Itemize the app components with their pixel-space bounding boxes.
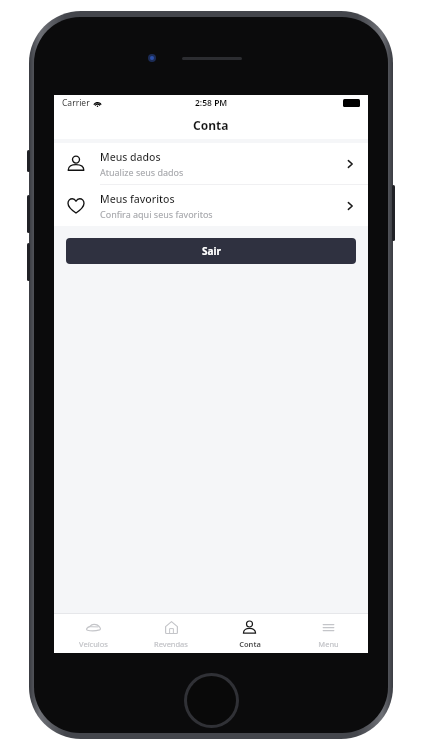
staticText: Meus favoritos [100,192,175,206]
staticText: Confira aqui seus favoritos [100,208,213,220]
staticText: Veículos [79,639,108,649]
staticText: Atualize seus dados [100,166,184,178]
button[interactable]: Revendas [132,614,210,653]
button[interactable]: Sair [66,238,356,264]
staticText: Sair [202,244,221,258]
staticText: Conta [193,117,229,133]
button[interactable]: Veículos [54,614,132,653]
staticText: Carrier [62,97,90,109]
button[interactable]: Meus dados [54,143,368,184]
staticText: Conta [239,639,261,649]
staticText: Menu [318,639,339,649]
button[interactable]: Conta [210,614,289,653]
button[interactable]: Meus favoritos [54,185,368,226]
staticText: Revendas [154,639,188,649]
staticText: Meus dados [100,150,161,164]
button[interactable]: Menu [289,614,368,653]
staticText: 2:58 PM [195,97,228,109]
